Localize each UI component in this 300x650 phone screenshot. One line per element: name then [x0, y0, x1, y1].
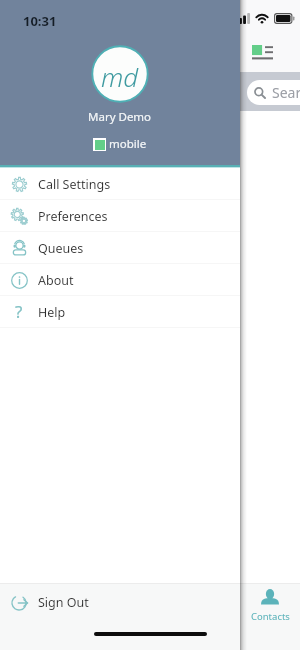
staticText: 10:31 — [23, 12, 57, 30]
button[interactable]: Call Settings — [0, 168, 240, 200]
staticText: md — [101, 59, 139, 94]
staticText: Queues — [38, 240, 84, 257]
button[interactable]: About — [0, 264, 240, 296]
button[interactable]: Contact groups — [252, 45, 273, 59]
button[interactable]: Preferences — [0, 200, 240, 232]
staticText: Sign Out — [38, 594, 89, 611]
button[interactable]: Contacts — [248, 589, 292, 623]
button[interactable]: Queues — [0, 232, 240, 264]
staticText: Help — [38, 304, 66, 321]
staticText: mobile — [109, 136, 147, 152]
staticText: Mary Demo — [88, 109, 152, 125]
staticText: Search — [272, 83, 300, 102]
staticText: ? — [15, 300, 23, 323]
button[interactable]: ? — [0, 296, 240, 328]
staticText: Contacts — [251, 610, 290, 623]
staticText: Call Settings — [38, 176, 111, 193]
staticText: Preferences — [38, 208, 108, 225]
button[interactable]: Search — [247, 80, 300, 105]
staticText: About — [38, 272, 74, 289]
button[interactable]: Sign Out — [0, 584, 240, 620]
